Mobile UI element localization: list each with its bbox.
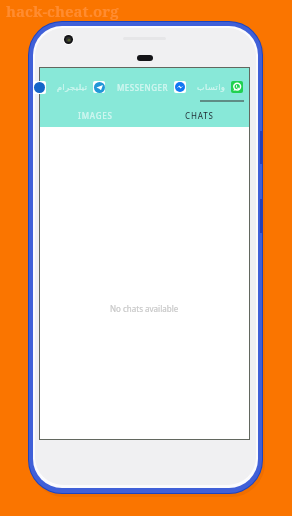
staticText: No chats available <box>110 303 179 314</box>
staticText: تيليجرام <box>57 83 88 92</box>
button[interactable]: تيليجرام <box>57 76 105 98</box>
button[interactable]: CHATS <box>147 103 252 127</box>
staticText: hack-cheat.org <box>6 1 119 21</box>
staticText: MESSENGER <box>117 82 169 93</box>
button[interactable]: واتساب <box>197 76 243 98</box>
button[interactable]: IMAGES <box>43 103 147 127</box>
staticText: CHATS <box>185 110 214 121</box>
button[interactable]: MESSENGER <box>117 76 186 98</box>
staticText: IMAGES <box>78 110 113 121</box>
staticText: واتساب <box>197 83 226 92</box>
